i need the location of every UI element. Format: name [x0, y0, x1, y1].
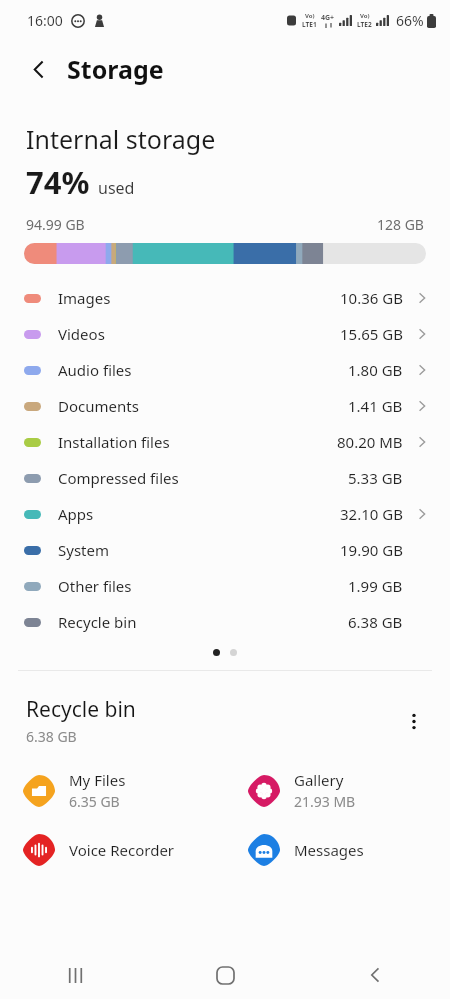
staticText: 74% [26, 161, 90, 203]
staticText: Voice Recorder [69, 840, 175, 860]
staticText: Other files [58, 576, 132, 596]
staticText: 1.41 GB [348, 396, 403, 416]
staticText: 16:00 [27, 11, 63, 30]
staticText: 1.99 GB [348, 576, 403, 596]
staticText: Audio files [58, 360, 132, 380]
staticText: 80.20 MB [337, 432, 403, 452]
staticText: Gallery [294, 770, 344, 790]
button[interactable]: Audio files [0, 352, 450, 388]
staticText: Compressed files [58, 468, 179, 488]
staticText: Documents [58, 396, 139, 416]
button[interactable]: Installation files [0, 424, 450, 460]
button[interactable]: Back [20, 51, 56, 87]
button[interactable]: Videos [0, 316, 450, 352]
staticText: 19.90 GB [340, 540, 403, 560]
button[interactable]: System [0, 532, 450, 568]
button[interactable]: Other files [0, 568, 450, 604]
staticText: 66% [396, 11, 424, 30]
staticText: 15.65 GB [340, 324, 403, 344]
button[interactable]: Recycle bin [0, 604, 450, 640]
button[interactable]: Recent apps [0, 951, 150, 999]
staticText: 21.93 MB [294, 792, 356, 811]
staticText: Recycle bin [26, 695, 136, 724]
staticText: 6.38 GB [26, 727, 77, 746]
button[interactable]: My Files [0, 770, 225, 811]
staticText: Vo) [360, 12, 370, 20]
staticText: Apps [58, 504, 94, 524]
staticText: Vo) [305, 12, 315, 20]
button[interactable]: Messages [225, 833, 450, 867]
staticText: System [58, 540, 109, 560]
staticText: 128 GB [377, 215, 424, 234]
staticText: 10.36 GB [340, 288, 403, 308]
staticText: 32.10 GB [340, 504, 403, 524]
staticText: used [98, 177, 135, 199]
staticText: 4G+ [321, 13, 335, 23]
button[interactable]: Home [150, 951, 300, 999]
staticText: 94.99 GB [26, 215, 85, 234]
staticText: Videos [58, 324, 105, 344]
staticText: 6.35 GB [69, 792, 120, 811]
staticText: 1.80 GB [348, 360, 403, 380]
staticText: Recycle bin [58, 612, 137, 632]
staticText: 5.33 GB [348, 468, 403, 488]
staticText: Internal storage [26, 122, 216, 156]
staticText: Storage [67, 52, 164, 86]
staticText: Installation files [58, 432, 170, 452]
staticText: LTE2 [357, 20, 372, 29]
button[interactable]: Images [0, 280, 450, 316]
staticText: 6.38 GB [348, 612, 403, 632]
button[interactable]: Compressed files [0, 460, 450, 496]
button[interactable]: Gallery [225, 770, 450, 811]
staticText: My Files [69, 770, 126, 790]
button[interactable]: Apps [0, 496, 450, 532]
button[interactable]: More options [394, 701, 434, 741]
button[interactable]: Voice Recorder [0, 833, 225, 867]
staticText: Images [58, 288, 111, 308]
button[interactable]: Documents [0, 388, 450, 424]
button[interactable]: Back [300, 951, 450, 999]
staticText: LTE1 [302, 20, 317, 29]
staticText: Messages [294, 840, 364, 860]
